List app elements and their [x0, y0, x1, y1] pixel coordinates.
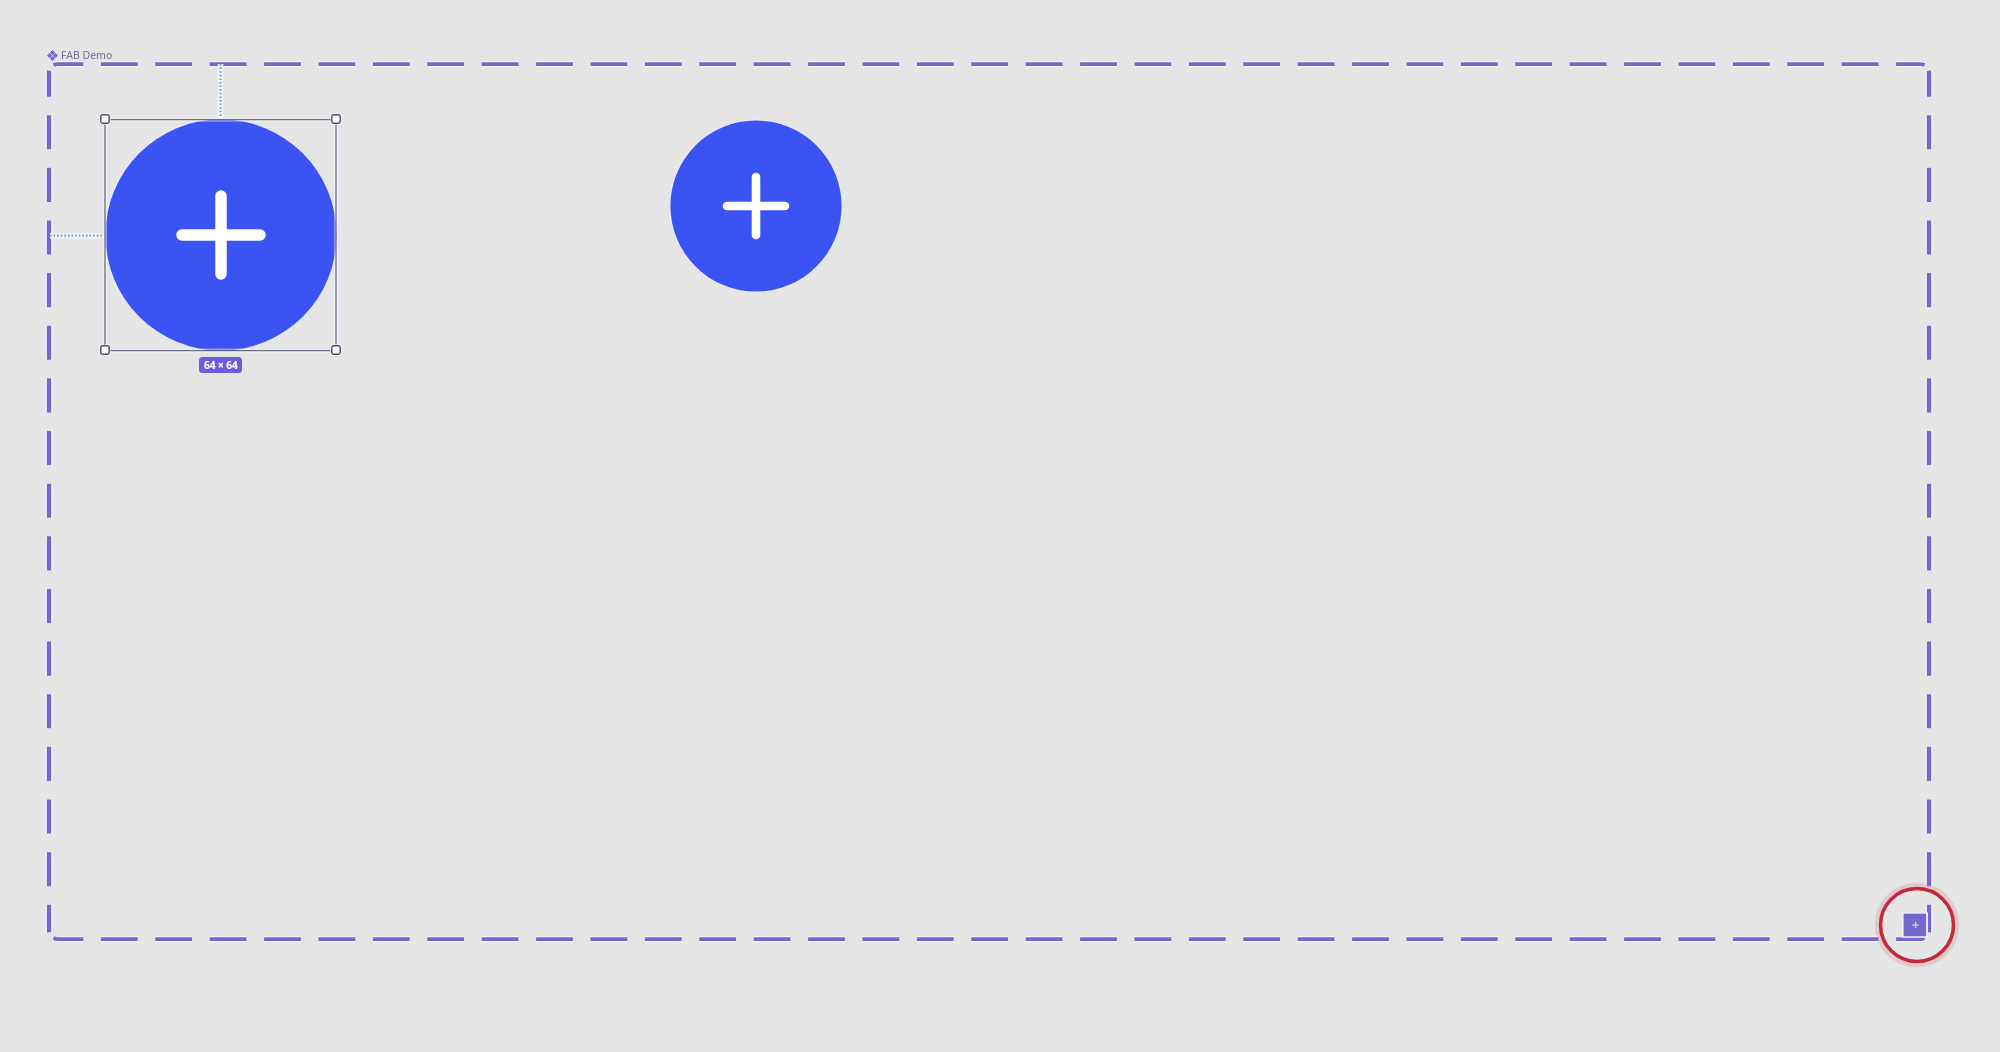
button[interactable]: 64 × 64: [199, 357, 242, 373]
button[interactable]: Add: [104, 118, 338, 352]
button[interactable]: FAB Demo: [47, 48, 113, 62]
staticText: FAB Demo: [61, 48, 113, 62]
button[interactable]: Duplicate: [1880, 888, 1954, 962]
button[interactable]: Add item: [669, 119, 843, 293]
staticText: 64 × 64: [204, 358, 238, 372]
